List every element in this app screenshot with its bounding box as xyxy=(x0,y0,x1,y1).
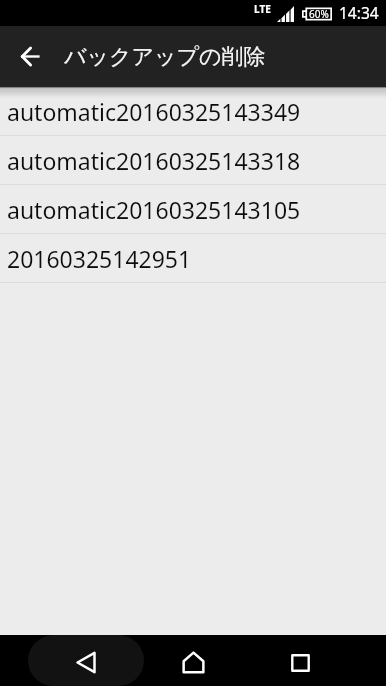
staticText: automatic20160325143318 xyxy=(7,145,301,176)
staticText: automatic20160325143349 xyxy=(7,96,301,127)
button[interactable]: automatic20160325143105 xyxy=(0,185,386,234)
staticText: 60% xyxy=(309,7,329,21)
button[interactable]: Back xyxy=(6,26,54,87)
button[interactable]: automatic20160325143318 xyxy=(0,136,386,185)
button[interactable]: automatic20160325143349 xyxy=(0,87,386,136)
staticText: LTE xyxy=(254,2,271,16)
staticText: automatic20160325143105 xyxy=(7,194,301,225)
button[interactable]: 20160325142951 xyxy=(0,234,386,283)
button[interactable]: Back xyxy=(28,635,144,686)
button[interactable]: Recent apps xyxy=(278,635,322,686)
staticText: 14:34 xyxy=(339,2,379,23)
staticText: 20160325142951 xyxy=(7,243,192,274)
button[interactable]: Home xyxy=(171,635,215,686)
staticText: バックアップの削除 xyxy=(64,43,266,71)
